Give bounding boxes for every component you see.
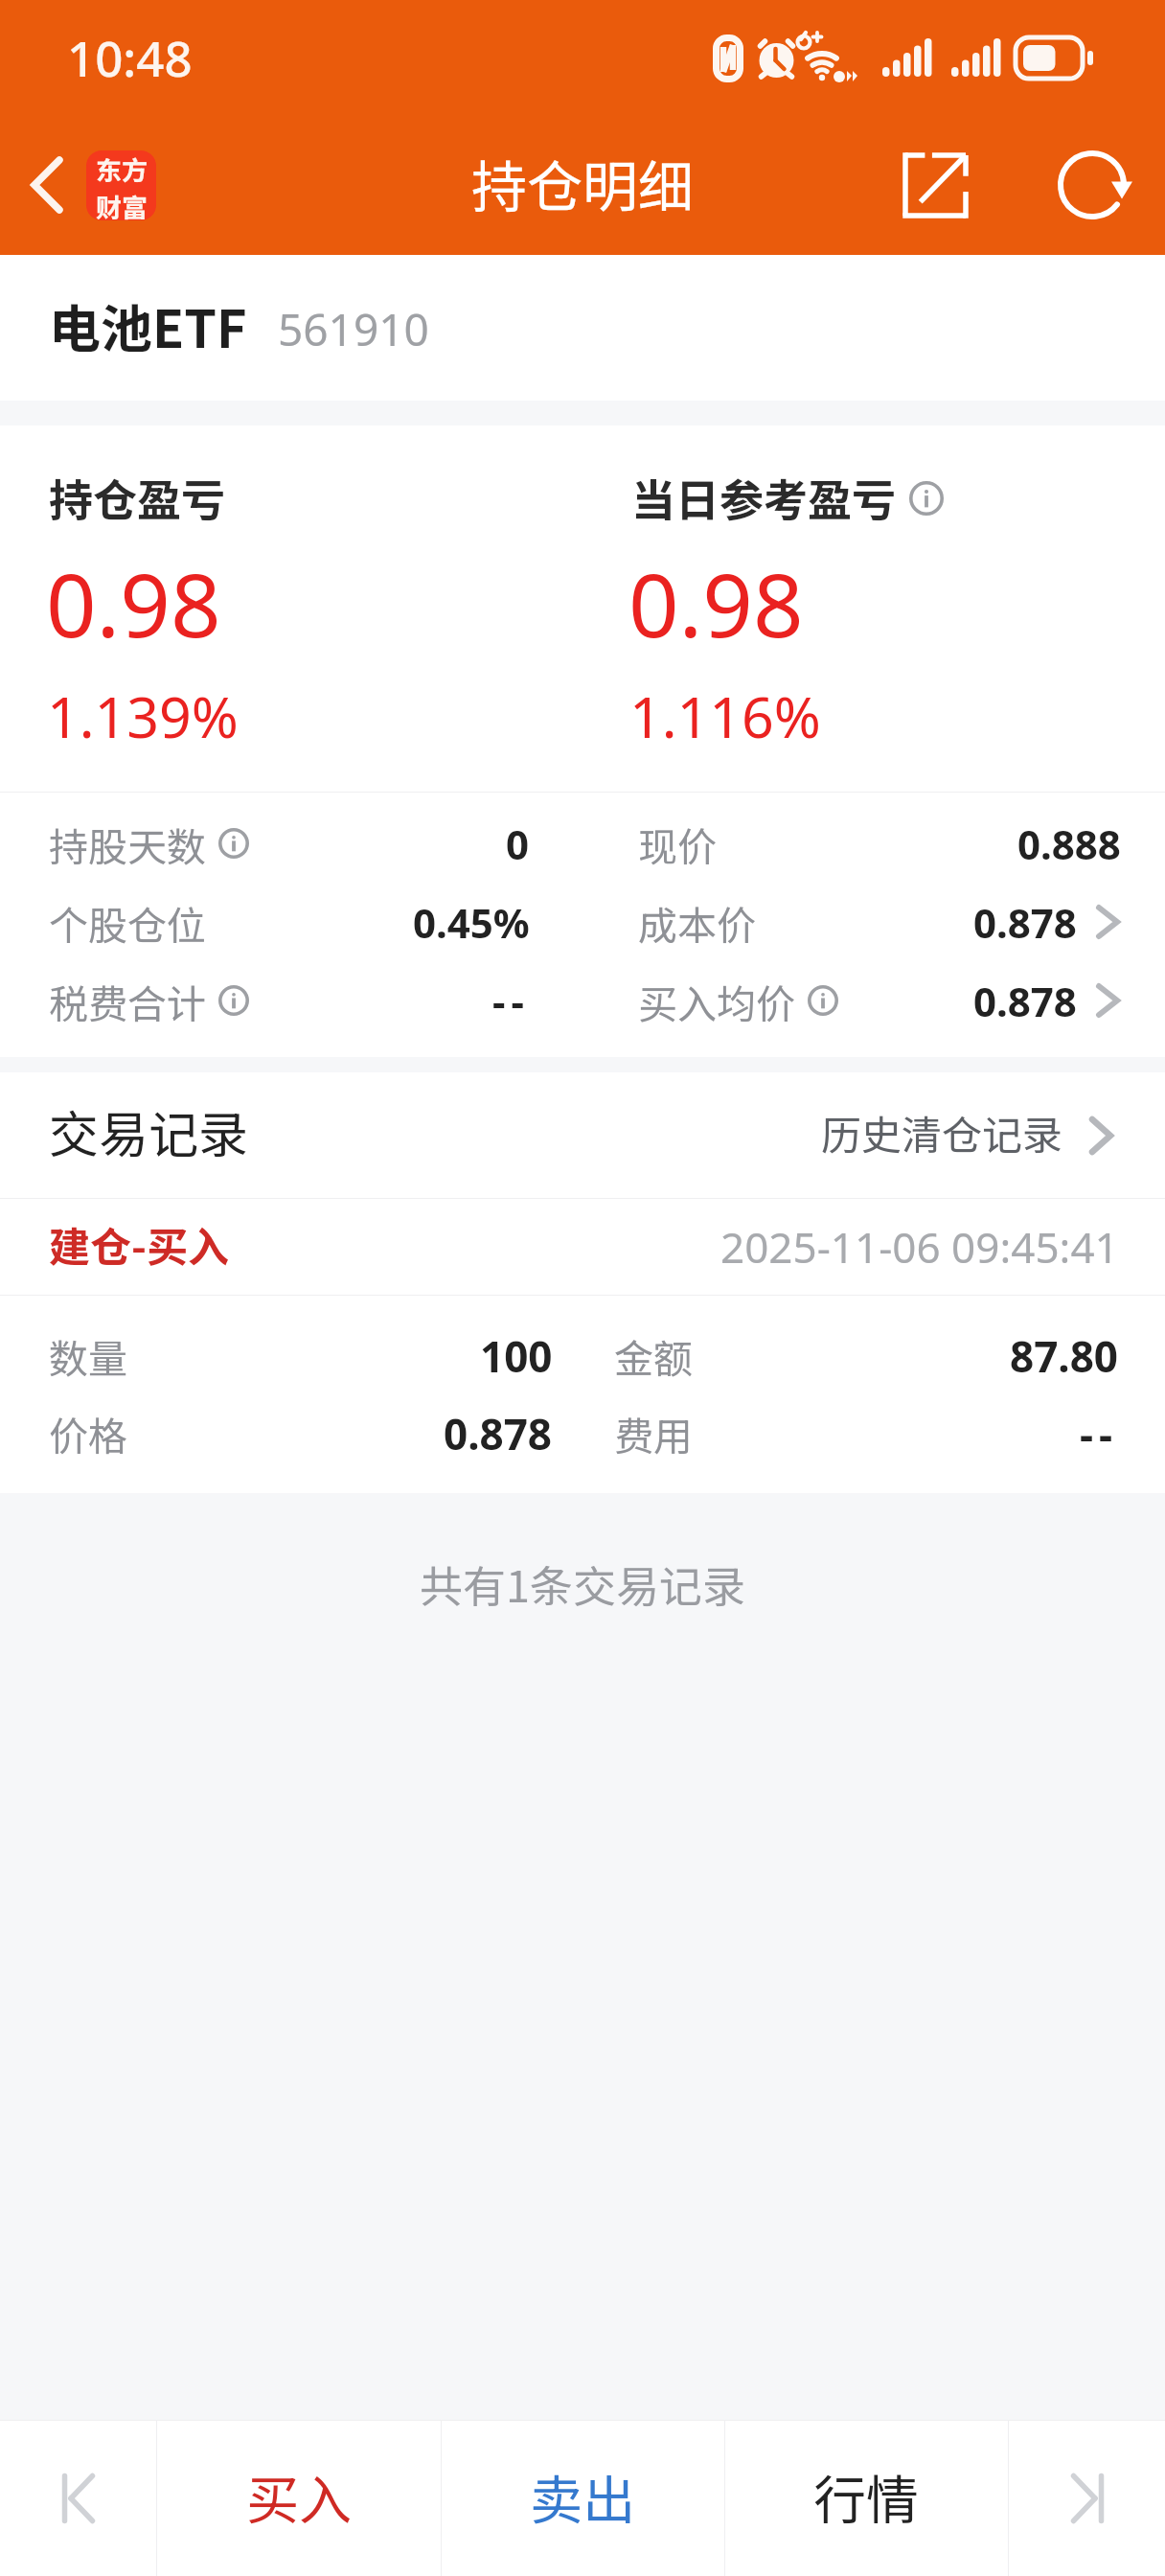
button[interactable]: 买入均价 — [582, 961, 1165, 1040]
staticText: 当日参考盈亏 — [631, 466, 896, 530]
staticText: 1.116% — [629, 678, 821, 754]
button[interactable]: Share — [869, 115, 1003, 255]
staticText: 价格 — [49, 1405, 127, 1461]
button[interactable]: Back — [0, 115, 94, 255]
button[interactable]: 行情 — [725, 2421, 1008, 2576]
staticText: 1.139% — [47, 678, 239, 754]
button[interactable]: First page — [0, 2421, 156, 2576]
staticText: 费用 — [614, 1405, 693, 1461]
staticText: -- — [492, 974, 530, 1028]
staticText: 持仓盈亏 — [49, 466, 225, 530]
staticText: 数量 — [49, 1327, 127, 1384]
staticText: 金额 — [614, 1327, 693, 1384]
staticText: 卖出 — [530, 2458, 636, 2535]
staticText: 现价 — [638, 816, 717, 872]
staticText: 0.878 — [973, 974, 1077, 1028]
staticText: 个股仓位 — [49, 894, 206, 951]
staticText: 10:48 — [67, 24, 193, 90]
staticText: 561910 — [278, 299, 429, 359]
staticText: 100 — [480, 1327, 553, 1385]
staticText: -- — [1080, 1405, 1119, 1462]
staticText: 买入均价 — [638, 973, 795, 1029]
staticText: 财富 — [96, 188, 148, 220]
staticText: 0.45% — [413, 895, 530, 950]
button[interactable]: 个股仓位 — [0, 883, 582, 961]
staticText: 持股天数 — [49, 816, 206, 872]
button[interactable]: 持股天数 — [0, 804, 582, 883]
staticText: 2025-11-06 09:45:41 — [720, 1218, 1119, 1276]
button[interactable]: 建仓-买入 — [0, 1199, 1165, 1295]
staticText: 持仓明细 — [471, 143, 695, 223]
button[interactable]: 历史清仓记录 — [821, 1106, 1114, 1164]
staticText: 买入 — [246, 2458, 353, 2535]
staticText: 交易记录 — [49, 1095, 249, 1167]
staticText: 历史清仓记录 — [821, 1103, 1063, 1161]
staticText: 共有1条交易记录 — [420, 1552, 745, 1615]
staticText: 0.878 — [444, 1405, 553, 1462]
button[interactable]: 税费合计 — [0, 961, 582, 1040]
button[interactable]: 卖出 — [442, 2421, 724, 2576]
staticText: 87.80 — [1010, 1327, 1119, 1385]
staticText: 东方 — [96, 150, 148, 188]
staticText: 电池ETF — [49, 287, 247, 362]
staticText: 0.878 — [973, 895, 1077, 950]
button[interactable]: 电池ETF — [49, 287, 429, 362]
button[interactable]: Last page — [1009, 2421, 1165, 2576]
staticText: 0.98 — [628, 543, 804, 663]
button[interactable]: 成本价 — [582, 883, 1165, 961]
button[interactable]: Refresh — [1025, 115, 1159, 255]
staticText: 0.888 — [1017, 816, 1121, 871]
button[interactable]: 买入 — [157, 2421, 441, 2576]
staticText: 成本价 — [638, 894, 756, 951]
button[interactable]: 现价 — [582, 804, 1165, 883]
button[interactable]: East Money — [86, 150, 156, 220]
staticText: 0.98 — [46, 543, 221, 663]
staticText: 0 — [506, 816, 530, 871]
staticText: 税费合计 — [49, 973, 206, 1029]
staticText: 建仓-买入 — [49, 1214, 229, 1274]
staticText: 行情 — [813, 2458, 920, 2535]
